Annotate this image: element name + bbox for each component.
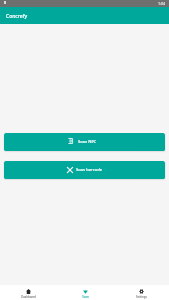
button[interactable]: Scan barcode [4, 161, 165, 179]
staticText: Concrefy [6, 13, 28, 20]
staticText: Settings [136, 295, 147, 299]
staticText: Scan [82, 295, 89, 299]
staticText: 1:04 [158, 1, 166, 6]
button[interactable]: Scan NFC [4, 133, 165, 151]
staticText: Scan barcode [76, 167, 103, 173]
button[interactable]: Dashboard [0, 285, 57, 300]
button[interactable]: Settings [113, 285, 169, 300]
button[interactable]: Scan [57, 285, 113, 300]
staticText: Scan NFC [78, 139, 97, 145]
staticText: Dashboard [21, 295, 36, 299]
